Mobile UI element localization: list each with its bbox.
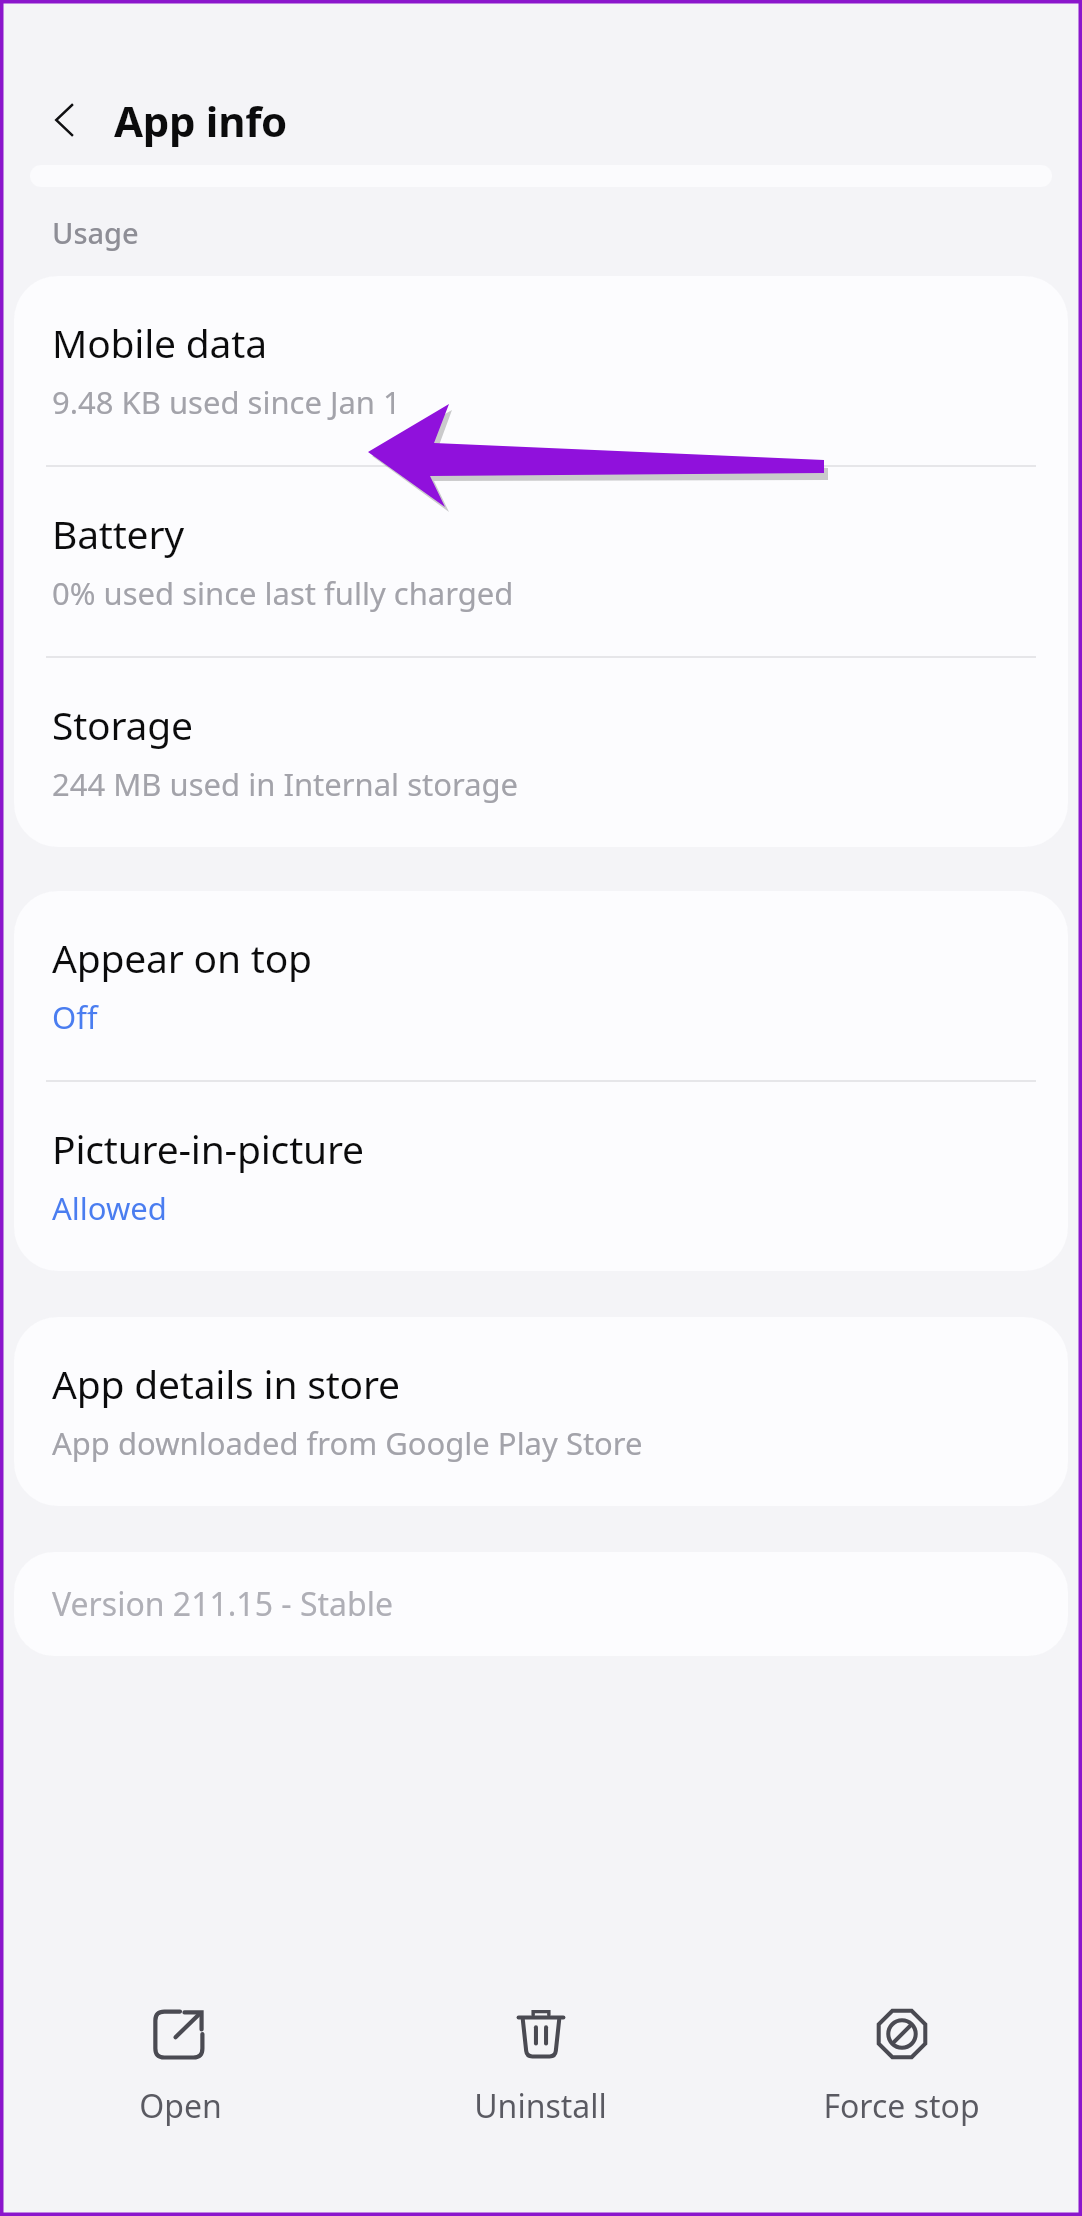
staticText: 0% used since last fully charged (52, 572, 514, 614)
button[interactable]: Battery (14, 467, 1068, 656)
staticText: Battery (52, 507, 184, 560)
staticText: 244 MB used in Internal storage (52, 763, 519, 805)
button[interactable]: Force stop (721, 1966, 1082, 2186)
button[interactable]: Uninstall (360, 1966, 721, 2186)
staticText: Uninstall (474, 2084, 607, 2128)
button[interactable]: Mobile data (14, 276, 1068, 465)
button[interactable]: Back (34, 89, 96, 151)
staticText: Force stop (823, 2084, 980, 2128)
staticText: Mobile data (52, 316, 267, 369)
button[interactable]: Open (0, 1966, 360, 2186)
staticText: Appear on top (52, 931, 312, 984)
staticText: 9.48 KB used since Jan 1 (52, 381, 401, 423)
button[interactable]: Picture-in-picture (14, 1082, 1068, 1271)
staticText: Open (139, 2084, 222, 2128)
staticText: App info (114, 92, 288, 149)
staticText: Version 211.15 - Stable (52, 1582, 393, 1626)
button[interactable]: App details in store (14, 1317, 1068, 1506)
button[interactable]: Storage (14, 658, 1068, 847)
staticText: App details in store (52, 1357, 400, 1410)
staticText: Off (52, 996, 98, 1038)
button[interactable]: Appear on top (14, 891, 1068, 1080)
staticText: Picture-in-picture (52, 1122, 364, 1175)
staticText: Allowed (52, 1187, 167, 1229)
staticText: Usage (52, 213, 139, 252)
staticText: Storage (52, 698, 193, 751)
staticText: App downloaded from Google Play Store (52, 1422, 643, 1464)
